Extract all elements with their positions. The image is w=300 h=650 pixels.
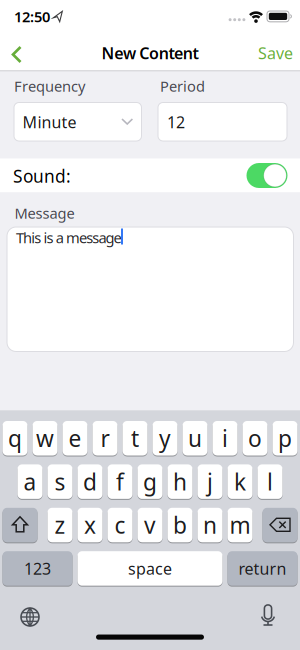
button[interactable]: i	[212, 421, 237, 456]
button[interactable]: z	[47, 508, 72, 543]
button[interactable]: d	[77, 464, 102, 500]
staticText: Period	[160, 76, 205, 96]
button[interactable]: 12	[158, 102, 287, 141]
staticText: m	[229, 510, 250, 540]
staticText: d	[83, 467, 97, 497]
staticText: t	[131, 423, 139, 453]
staticText: s	[54, 467, 65, 497]
staticText: r	[100, 423, 109, 453]
button[interactable]: 123	[2, 551, 72, 587]
button[interactable]: Shift	[2, 508, 37, 543]
button[interactable]: a	[17, 464, 42, 500]
button[interactable]: y	[152, 421, 177, 456]
staticText: return	[238, 558, 286, 579]
button[interactable]: v	[137, 508, 162, 543]
button[interactable]: Dictate	[258, 604, 279, 627]
button[interactable]: return	[227, 551, 297, 587]
staticText: 12:50	[14, 7, 50, 26]
staticText: f	[116, 467, 124, 497]
staticText: space	[128, 558, 172, 579]
button[interactable]: q	[2, 421, 27, 456]
staticText: This is a message	[16, 228, 122, 247]
staticText: l	[267, 467, 273, 497]
button[interactable]: Minute	[14, 102, 141, 141]
staticText: Frequency	[14, 76, 85, 96]
staticText: New Content	[101, 42, 198, 64]
staticText: b	[173, 510, 187, 540]
staticText: g	[143, 467, 157, 497]
staticText: k	[234, 467, 246, 497]
staticText: w	[36, 423, 54, 453]
button[interactable]: m	[227, 508, 252, 543]
staticText: Sound:	[13, 164, 71, 187]
button[interactable]: p	[272, 421, 297, 456]
staticText: h	[173, 467, 187, 497]
staticText: e	[68, 423, 81, 453]
staticText: Save	[258, 42, 293, 64]
staticText: x	[84, 510, 96, 540]
button[interactable]: Back	[11, 45, 23, 63]
staticText: n	[203, 510, 217, 540]
staticText: v	[144, 510, 156, 540]
button[interactable]: o	[242, 421, 267, 456]
staticText: o	[248, 423, 262, 453]
button[interactable]: g	[137, 464, 162, 500]
staticText: p	[278, 423, 292, 453]
button[interactable]: u	[182, 421, 207, 456]
button[interactable]: b	[167, 508, 192, 543]
button[interactable]: h	[167, 464, 192, 500]
button[interactable]: Sound	[246, 163, 287, 188]
button[interactable]: e	[62, 421, 87, 456]
button[interactable]: w	[32, 421, 57, 456]
button[interactable]: Next keyboard	[20, 607, 40, 627]
button[interactable]: f	[107, 464, 132, 500]
staticText: y	[159, 423, 171, 453]
staticText: 12	[167, 111, 185, 133]
staticText: Minute	[22, 111, 76, 133]
staticText: u	[188, 423, 202, 453]
button[interactable]: k	[227, 464, 252, 500]
staticText: z	[54, 510, 65, 540]
staticText: 123	[24, 558, 51, 579]
button[interactable]: Delete	[262, 508, 297, 543]
staticText: a	[23, 467, 36, 497]
staticText: Message	[14, 203, 74, 223]
button[interactable]: n	[197, 508, 222, 543]
staticText: q	[8, 423, 22, 453]
button[interactable]: Save	[258, 44, 300, 61]
button[interactable]: s	[47, 464, 72, 500]
button[interactable]: x	[77, 508, 102, 543]
staticText: j	[207, 467, 213, 497]
button[interactable]: j	[197, 464, 222, 500]
button[interactable]: c	[107, 508, 132, 543]
button[interactable]: This is a message	[7, 227, 293, 351]
button[interactable]: t	[122, 421, 147, 456]
button[interactable]: r	[92, 421, 117, 456]
staticText: c	[114, 510, 125, 540]
button[interactable]: space	[77, 551, 222, 587]
button[interactable]: l	[257, 464, 282, 500]
staticText: i	[222, 423, 228, 453]
